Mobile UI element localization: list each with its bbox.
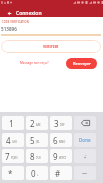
button[interactable]: 6 (50, 133, 72, 147)
button[interactable]: # (50, 166, 72, 180)
button[interactable]: Renvoyer (66, 58, 97, 69)
staticText: * (8, 168, 13, 179)
staticText: 3 (54, 118, 59, 129)
button[interactable]: 4 (2, 133, 24, 147)
staticText: Connexion (16, 10, 42, 17)
button[interactable]: * (2, 166, 24, 180)
staticText: 0 (31, 168, 36, 179)
staticText: + (37, 173, 39, 177)
button[interactable]: 8 (26, 149, 48, 163)
staticText: 7 (5, 151, 10, 162)
staticText: # (55, 168, 61, 179)
staticText: GHI (12, 140, 17, 144)
button[interactable]: VERIFIER (1, 40, 101, 53)
staticText: 1 (9, 118, 14, 129)
button[interactable]: 5 (26, 133, 48, 147)
button[interactable]: ,; (74, 149, 96, 163)
button[interactable]: 2 (26, 116, 48, 130)
staticText: — (82, 170, 88, 177)
button[interactable]: 3 (50, 116, 72, 130)
staticText: MNO (59, 140, 66, 144)
staticText: 513896 (1, 26, 17, 32)
staticText: ,; (84, 153, 87, 160)
staticText: 5 (30, 135, 35, 146)
staticText: DEF (60, 123, 65, 127)
staticText: CODE VERIFICATION (2, 20, 29, 24)
staticText: Renvoyer (73, 61, 91, 66)
button[interactable]: Message non reçu ? (20, 61, 49, 65)
staticText: PQRS (11, 156, 18, 160)
staticText: 2 (30, 118, 35, 129)
staticText: 4 (6, 135, 11, 146)
button[interactable]: Done (74, 133, 96, 147)
button[interactable]: 9 (50, 149, 72, 163)
button[interactable]: 7 (2, 149, 24, 163)
staticText: WXYZ (59, 156, 66, 160)
staticText: Done (79, 137, 91, 143)
staticText: 8 (30, 151, 35, 162)
other: Backspace (81, 120, 90, 126)
button[interactable]: Back (4, 8, 14, 18)
staticText: TUV (36, 156, 41, 160)
button[interactable]: 0 (26, 166, 48, 180)
staticText: 6 (53, 135, 58, 146)
staticText: 9 (53, 151, 58, 162)
staticText: VERIFIER (43, 45, 59, 49)
button[interactable]: — (74, 166, 96, 180)
button[interactable]: Backspace (74, 116, 96, 130)
staticText: ABC (36, 123, 41, 127)
staticText: JKL (36, 140, 40, 144)
button[interactable]: 1 (2, 116, 24, 130)
